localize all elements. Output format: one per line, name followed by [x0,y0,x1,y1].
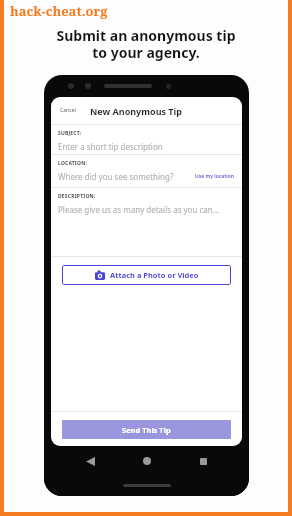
button[interactable]: Use my location [194,171,235,182]
staticText: Where did you see something? [58,171,194,182]
button[interactable]: Attach a Photo or Video [62,265,231,285]
button[interactable]: Home [136,450,158,472]
staticText: Submit an anonymous tip to your agency. [12,26,280,62]
button[interactable]: Cancel [58,104,78,117]
staticText: New Anonymous Tip [90,105,182,117]
staticText: DESCRIPTION: [58,193,96,200]
staticText: LOCATION: [58,160,88,167]
button[interactable]: SUBJECT: [51,125,242,154]
staticText: Use my location [195,173,234,180]
staticText: Attach a Photo or Video [110,270,199,280]
staticText: Enter a short tip description [58,141,163,152]
staticText: SUBJECT: [58,130,82,137]
button[interactable]: Back [79,450,101,472]
staticText: Cancel [60,107,76,114]
button[interactable]: Recent apps [192,450,214,472]
staticText: Please give us as many details as you ca… [58,204,220,215]
staticText: hack-cheat.org [10,2,108,20]
button[interactable]: DESCRIPTION: [51,188,242,256]
button[interactable]: Send This Tip [62,420,231,439]
staticText: Send This Tip [122,425,171,435]
button[interactable]: LOCATION: [51,155,242,187]
